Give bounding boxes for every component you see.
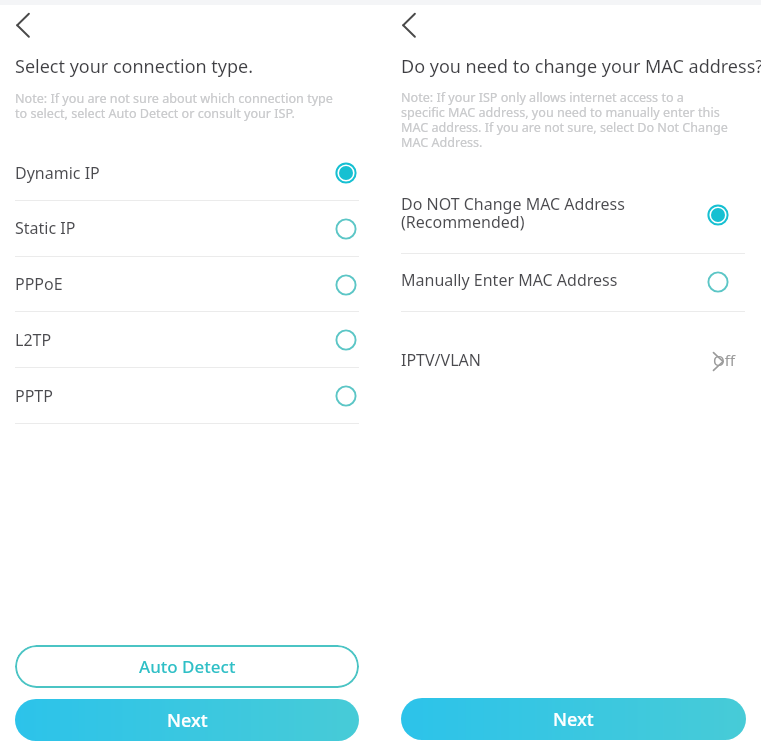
staticText: Off xyxy=(675,350,735,370)
button[interactable] xyxy=(0,257,373,313)
button[interactable]: Next xyxy=(15,699,359,741)
button[interactable] xyxy=(386,176,761,253)
staticText: Dynamic IP xyxy=(15,162,100,184)
button[interactable]: Not selected xyxy=(332,271,360,299)
staticText: Do you need to change your MAC address? xyxy=(401,54,761,79)
staticText: L2TP xyxy=(15,329,52,351)
button[interactable]: Selected xyxy=(332,159,360,187)
button[interactable] xyxy=(0,145,373,201)
staticText: Note: If you are not sure about which co… xyxy=(15,90,333,122)
staticText: Manually Enter MAC Address xyxy=(401,269,618,291)
button[interactable] xyxy=(0,368,373,424)
staticText: PPPoE xyxy=(15,273,63,295)
staticText: Next xyxy=(553,707,594,732)
button[interactable]: Not selected xyxy=(332,382,360,410)
staticText: Next xyxy=(167,708,208,733)
button[interactable]: Back xyxy=(12,10,44,42)
button[interactable] xyxy=(386,253,761,310)
button[interactable]: Not selected xyxy=(332,326,360,354)
staticText: Auto Detect xyxy=(139,655,236,678)
staticText: Note: If your ISP only allows internet a… xyxy=(401,89,728,151)
button[interactable] xyxy=(0,312,373,368)
staticText: Select your connection type. xyxy=(15,54,254,79)
staticText: Static IP xyxy=(15,217,76,239)
button[interactable]: Next xyxy=(401,698,746,740)
button[interactable]: Not selected xyxy=(704,268,732,296)
staticText: IPTV/VLAN xyxy=(401,349,481,371)
staticText: PPTP xyxy=(15,385,53,407)
button[interactable]: Not selected xyxy=(332,215,360,243)
button[interactable] xyxy=(386,333,761,389)
staticText: Do NOT Change MAC Address (Recommended) xyxy=(401,193,625,233)
button[interactable]: Auto Detect xyxy=(15,645,359,688)
button[interactable]: Back xyxy=(398,10,430,42)
button[interactable]: Selected xyxy=(704,201,732,229)
button[interactable] xyxy=(0,201,373,257)
